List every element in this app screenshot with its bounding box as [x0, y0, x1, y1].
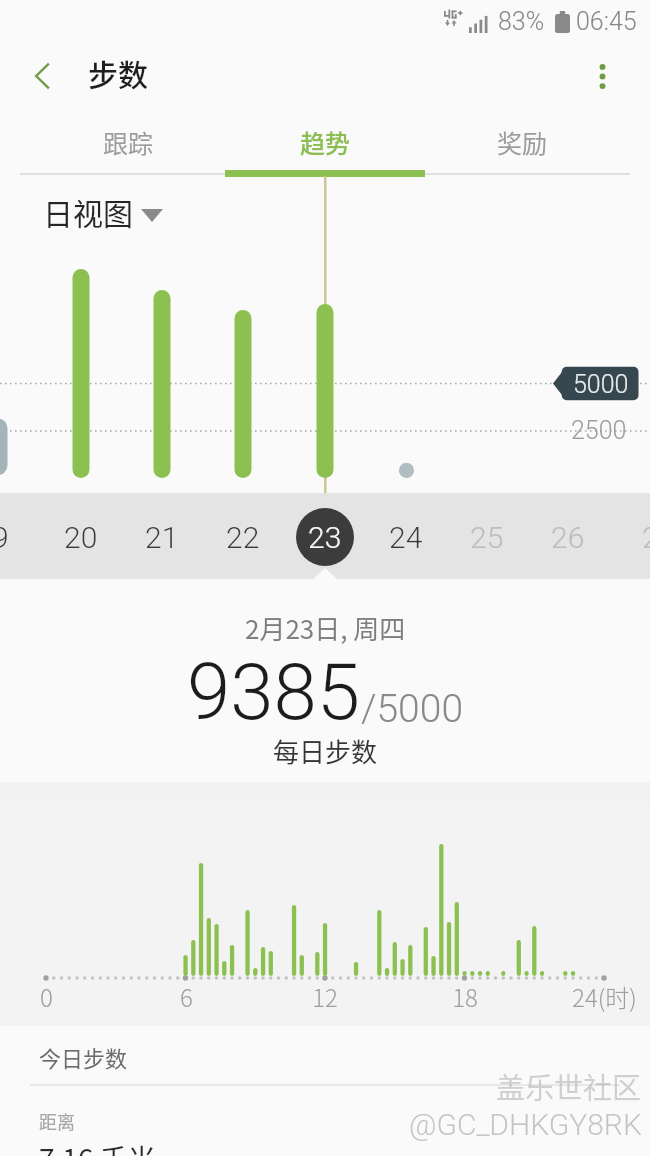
staticText: 0 — [40, 979, 53, 1014]
staticText: 步数 — [88, 51, 148, 94]
staticText: 9385 — [187, 647, 361, 738]
staticText: 18 — [452, 979, 478, 1014]
button[interactable]: 9 — [0, 504, 32, 570]
staticText: 24(时) — [572, 979, 637, 1014]
button[interactable]: More options — [574, 48, 630, 104]
staticText: 2月23日, 周四 — [245, 609, 406, 647]
staticText: 2500 — [571, 416, 627, 445]
staticText: @GC_DHKGY8RK — [409, 1107, 642, 1142]
staticText: 5000 — [573, 370, 629, 399]
staticText: 奖励 — [497, 124, 548, 160]
staticText: 24 — [389, 520, 423, 555]
staticText: 83% — [498, 7, 545, 36]
staticText: 跟踪 — [103, 124, 154, 160]
button[interactable]: 23 — [293, 504, 357, 570]
staticText: 20 — [64, 520, 98, 555]
button[interactable]: 日视图 — [43, 190, 163, 233]
staticText: 6 — [180, 979, 193, 1014]
staticText: 22 — [226, 520, 260, 555]
staticText: 趋势 — [300, 124, 351, 160]
staticText: 25 — [470, 520, 504, 555]
staticText: 距离 — [39, 1108, 75, 1134]
staticText: 06:45 — [576, 7, 637, 36]
button[interactable]: 跟踪 — [29, 110, 227, 174]
staticText: 日视图 — [43, 190, 133, 233]
staticText: 盖乐世社区 — [496, 1065, 642, 1107]
button[interactable]: 24 — [374, 504, 438, 570]
staticText: 7.16 千米 — [39, 1138, 156, 1156]
staticText: 2 — [642, 520, 650, 555]
button[interactable]: 奖励 — [424, 110, 621, 174]
button[interactable]: 2 — [618, 504, 650, 570]
button[interactable]: 26 — [536, 504, 600, 570]
button[interactable]: Back — [14, 48, 70, 104]
button[interactable]: 20 — [49, 504, 113, 570]
staticText: 21 — [145, 520, 179, 555]
staticText: /5000 — [361, 686, 464, 732]
button[interactable]: 21 — [130, 504, 194, 570]
staticText: 9 — [0, 520, 9, 555]
staticText: 每日步数 — [273, 732, 378, 770]
staticText: 26 — [551, 520, 585, 555]
staticText: 今日步数 — [39, 1041, 128, 1073]
staticText: 12 — [312, 979, 338, 1014]
button[interactable]: 22 — [211, 504, 275, 570]
button[interactable]: 25 — [455, 504, 519, 570]
staticText: 23 — [308, 520, 342, 555]
button[interactable]: 趋势 — [227, 110, 424, 174]
